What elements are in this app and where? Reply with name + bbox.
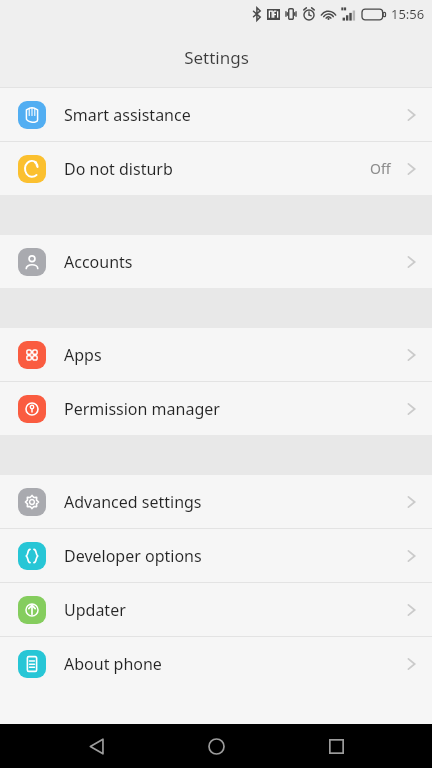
staticText: Permission manager — [64, 398, 220, 420]
button[interactable]: Back — [72, 724, 120, 768]
staticText: Accounts — [64, 251, 133, 273]
staticText: 15:56 — [391, 5, 425, 23]
staticText: Updater — [64, 599, 126, 621]
button[interactable]: Home — [192, 724, 240, 768]
staticText: Off — [370, 159, 391, 178]
staticText: Developer options — [64, 545, 202, 567]
staticText: About phone — [64, 653, 162, 675]
button[interactable]: Permission manager — [0, 382, 432, 435]
button[interactable]: Do not disturb — [0, 142, 432, 195]
staticText: Smart assistance — [64, 104, 191, 126]
staticText: Apps — [64, 344, 102, 366]
button[interactable]: Recents — [312, 724, 360, 768]
button[interactable]: About phone — [0, 637, 432, 690]
staticText: Settings — [184, 46, 249, 69]
button[interactable]: Updater — [0, 583, 432, 636]
button[interactable]: Accounts — [0, 235, 432, 288]
staticText: Do not disturb — [64, 158, 173, 180]
button[interactable]: Apps — [0, 328, 432, 381]
button[interactable]: Smart assistance — [0, 88, 432, 141]
button[interactable]: Advanced settings — [0, 475, 432, 528]
staticText: Advanced settings — [64, 491, 202, 513]
button[interactable]: Developer options — [0, 529, 432, 582]
